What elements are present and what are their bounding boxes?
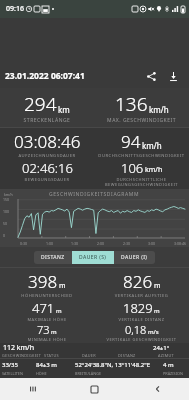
staticText: 24±1° [153,344,186,352]
staticText: 136 [115,91,148,117]
staticText: m [56,307,62,315]
staticText: 2:00 [97,241,104,246]
button[interactable]: Share [141,66,161,86]
staticText: m [154,281,161,291]
button[interactable]: DAUER (S) [72,251,114,264]
staticText: 0,18 [125,322,147,337]
staticText: 3:00 [148,241,155,246]
staticText: STRECKENLÄNGE [0,117,94,124]
button[interactable]: Home [63,378,126,400]
staticText: DISTANZ [118,353,158,358]
staticText: 0 [3,233,6,238]
staticText: m/s [148,328,159,336]
staticText: DAUER (I) [121,254,148,261]
staticText: 1:00 [46,241,53,246]
staticText: MINIMALE HÖHE [0,337,94,342]
staticText: 33/35 [2,361,36,369]
staticText: PRÄZISION [163,371,187,376]
staticText: 94 [121,130,141,153]
staticText: DAUER (S) [79,254,107,261]
button[interactable]: DISTANZ [34,251,72,264]
staticText: VERTIKALER AUFSTIEG [94,293,189,299]
staticText: AZIMUT [158,353,187,358]
staticText: 03:08:46 [14,130,81,153]
staticText: AUFZEICHNUNGSDAUER [0,153,94,159]
staticText: DURCHSCHNITTLICHE BEWEGUNGSGESCHWINDIGKE… [94,177,189,187]
staticText: STATUS [44,353,82,358]
staticText: 1829 [123,299,153,317]
staticText: km/h [149,104,169,115]
staticText: VERTIKALE GESCHWINDIGKEIT [94,337,189,342]
staticText: 4 m [163,361,187,369]
staticText: DAUER [82,353,118,358]
staticText: 398 [28,270,58,293]
staticText: HÖHE [36,371,75,376]
button[interactable]: DAUER (I) [114,251,155,264]
staticText: 84±3 m [36,361,75,369]
staticText: DISTANZ [41,254,65,261]
staticText: 73 [37,322,50,337]
staticText: 150 [3,197,10,202]
staticText: 294 [24,91,57,117]
staticText: MAXIMALE HÖHE [0,317,94,322]
staticText: m [59,281,66,291]
staticText: 471 [32,299,55,317]
staticText: km/h [4,192,13,197]
staticText: km/h [145,165,163,175]
staticText: HÖHENUNTERSCHIED [0,293,94,299]
staticText: 02:46:16 [22,159,73,177]
button[interactable]: Download [163,66,183,86]
staticText: MAX. GESCHWINDIGKEIT [94,117,189,124]
staticText: 50 [3,221,8,226]
staticText: 23.01.2022 06:07:41 [5,70,85,82]
staticText: m [51,328,57,336]
staticText: 52°24'38.8"N, 13°11'48.2"E [75,361,163,369]
staticText: 112 km/h [3,343,47,353]
staticText: SATELLITEN [2,371,36,376]
staticText: 3:08:46 [174,241,186,246]
button[interactable]: Recents [0,378,63,400]
staticText: 100 [3,209,10,214]
staticText: GESCHWINDIGKEIT [2,353,44,358]
staticText: m [154,307,160,315]
staticText: VERTIKALE DISTANZ [94,317,189,322]
staticText: 826 [123,270,153,293]
staticText: 0:30 [20,241,27,246]
staticText: GESCHWINDIGKEITSDIAGRAMM [49,191,140,198]
staticText: 106 [121,159,144,177]
staticText: km/h [142,140,162,151]
staticText: 2:30 [123,241,130,246]
button[interactable]: Back [126,378,189,400]
staticText: BEWEGUNGSDAUER [0,177,94,182]
staticText: DURCHSCHNITTSGESCHWINDIGKEIT [94,153,189,159]
staticText: BREITE/LÄNGE [75,371,163,376]
staticText: km [58,104,70,115]
staticText: 1:30 [71,241,78,246]
staticText: 09:16 [6,4,24,14]
